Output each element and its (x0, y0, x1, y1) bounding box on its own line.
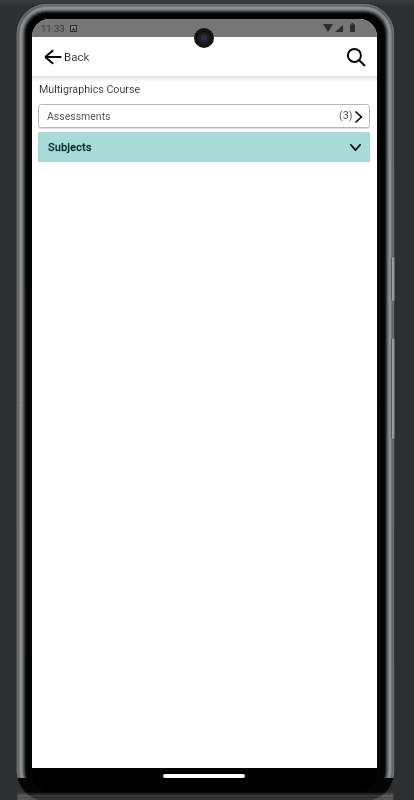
button[interactable]: Assessments (38, 104, 370, 128)
staticText: Assessments (47, 110, 111, 122)
staticText: 11:33 (41, 23, 65, 34)
staticText: Back (64, 50, 90, 63)
button[interactable]: Back (37, 38, 98, 76)
button[interactable]: Subjects (38, 132, 370, 162)
button[interactable]: Search (340, 41, 374, 75)
staticText: (3) (339, 109, 353, 122)
staticText: Multigraphics Course (39, 83, 141, 96)
staticText: Subjects (48, 141, 92, 154)
